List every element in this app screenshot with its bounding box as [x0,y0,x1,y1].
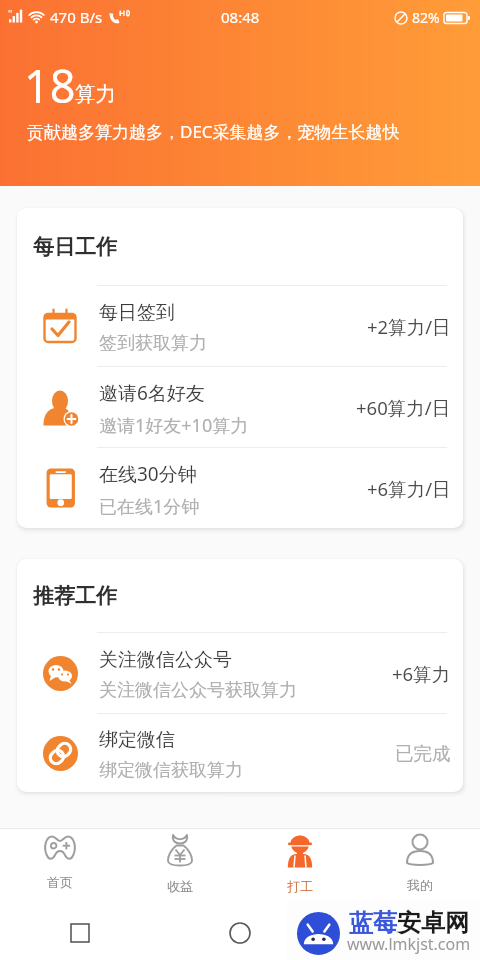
button[interactable]: 关注微信公众号 [17,633,463,713]
staticText: 签到获取算力 [99,332,207,355]
staticText: www.lmkjst.com [347,933,471,955]
staticText: 蓝莓 [349,908,397,938]
staticText: 安卓网 [397,908,469,938]
button[interactable]: Recent apps [0,906,160,960]
button[interactable]: 收益 [120,829,240,906]
staticText: 贡献越多算力越多，DEC采集越多，宠物生长越快 [27,120,400,143]
staticText: 收益 [167,878,193,894]
staticText: 邀请6名好友 [99,380,205,406]
button[interactable]: Home [160,906,320,960]
staticText: 82% [412,8,440,27]
button[interactable]: 在线30分钟 [17,448,463,528]
button[interactable]: 邀请6名好友 [17,367,463,447]
staticText: 打工 [287,878,313,894]
staticText: 470 B/s [50,7,103,27]
staticText: 每日签到 [99,301,175,325]
button[interactable]: 打工 [240,829,360,906]
button[interactable]: 绑定微信 [17,714,463,792]
staticText: +2算力/日 [367,314,451,339]
staticText: 在线30分钟 [99,461,197,487]
staticText: 邀请1好友+10算力 [99,413,249,438]
staticText: 每日工作 [33,234,117,260]
staticText: 08:48 [221,7,260,27]
staticText: 推荐工作 [33,583,117,609]
staticText: 绑定微信获取算力 [99,759,243,782]
staticText: 绑定微信 [99,728,175,752]
staticText: 关注微信公众号 [99,648,232,672]
button[interactable]: 我的 [360,829,480,906]
staticText: +6算力/日 [367,476,451,501]
staticText: +60算力/日 [356,395,451,420]
staticText: 已在线1分钟 [99,494,200,519]
staticText: +6算力 [392,661,451,686]
staticText: 已完成 [395,742,451,765]
staticText: 算力 [75,81,116,107]
staticText: 首页 [47,874,73,890]
staticText: 我的 [407,877,433,893]
staticText: 关注微信公众号获取算力 [99,679,297,702]
staticText: 18 [24,55,76,116]
button[interactable]: 首页 [0,829,120,906]
button[interactable]: 每日签到 [17,286,463,366]
